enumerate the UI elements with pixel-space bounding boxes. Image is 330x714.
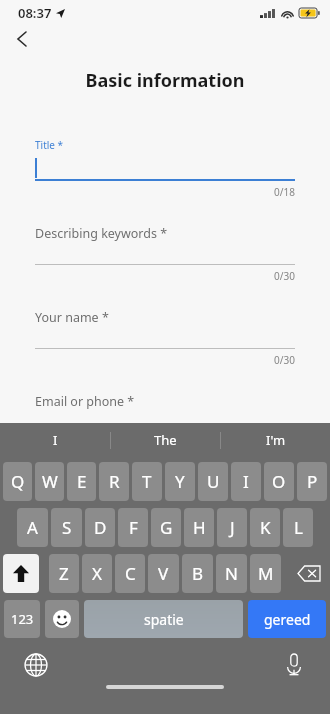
staticText: I: [53, 431, 58, 449]
button[interactable]: R: [99, 462, 129, 501]
button[interactable]: gereed: [248, 600, 326, 638]
button[interactable]: spatie: [84, 600, 243, 638]
staticText: P: [307, 470, 318, 493]
button[interactable]: D: [85, 508, 115, 547]
button[interactable]: G: [151, 508, 181, 547]
button[interactable]: L: [283, 508, 313, 547]
staticText: Q: [11, 470, 25, 493]
staticText: Your name *: [35, 309, 109, 326]
staticText: I: [243, 470, 249, 493]
button[interactable]: Shift: [3, 554, 39, 593]
staticText: gereed: [264, 610, 311, 629]
button[interactable]: Your name *: [35, 309, 295, 367]
staticText: Describing keywords *: [35, 225, 168, 242]
button[interactable]: M: [250, 554, 281, 593]
button[interactable]: C: [115, 554, 145, 593]
button[interactable]: I: [231, 462, 261, 501]
staticText: W: [42, 470, 58, 493]
staticText: R: [109, 470, 120, 493]
staticText: 0/30: [35, 353, 295, 367]
button[interactable]: T: [132, 462, 162, 501]
staticText: O: [272, 470, 286, 493]
button[interactable]: H: [184, 508, 214, 547]
button[interactable]: W: [35, 462, 64, 501]
staticText: A: [27, 516, 38, 539]
button[interactable]: B: [182, 554, 213, 593]
staticText: 0/18: [35, 185, 295, 199]
staticText: H: [193, 516, 206, 539]
button[interactable]: S: [51, 508, 82, 547]
staticText: The: [154, 431, 177, 449]
staticText: G: [160, 516, 173, 539]
staticText: 0/30: [35, 437, 295, 451]
button[interactable]: F: [118, 508, 148, 547]
staticText: E: [77, 470, 87, 493]
button[interactable]: K: [250, 508, 280, 547]
staticText: L: [294, 516, 303, 539]
staticText: F: [129, 516, 138, 539]
button[interactable]: Back: [0, 26, 44, 52]
button[interactable]: U: [198, 462, 228, 501]
button[interactable]: J: [217, 508, 247, 547]
button[interactable]: Title *: [35, 138, 295, 199]
button[interactable]: Y: [165, 462, 195, 501]
button[interactable]: Emoji: [45, 600, 79, 638]
staticText: 0/30: [35, 269, 295, 283]
button[interactable]: P: [297, 462, 327, 501]
staticText: 123: [11, 610, 34, 628]
staticText: U: [207, 470, 220, 493]
staticText: T: [142, 470, 152, 493]
button[interactable]: Z: [49, 554, 79, 593]
button[interactable]: Voice input: [278, 649, 310, 681]
staticText: Y: [175, 470, 185, 493]
button[interactable]: E: [67, 462, 96, 501]
staticText: N: [225, 562, 238, 585]
staticText: I'm: [266, 431, 286, 449]
button[interactable]: O: [264, 462, 294, 501]
button[interactable]: V: [148, 554, 179, 593]
button[interactable]: N: [216, 554, 247, 593]
button[interactable]: I: [0, 423, 110, 457]
staticText: 08:37: [18, 4, 52, 22]
staticText: X: [92, 562, 102, 585]
button[interactable]: Change keyboard language: [20, 649, 52, 681]
staticText: K: [260, 516, 271, 539]
staticText: S: [62, 516, 72, 539]
button[interactable]: I'm: [221, 423, 330, 457]
button[interactable]: 123: [4, 600, 40, 638]
button[interactable]: Email or phone *: [35, 393, 295, 451]
button[interactable]: Describing keywords *: [35, 225, 295, 283]
staticText: J: [230, 516, 235, 539]
staticText: V: [158, 562, 169, 585]
button[interactable]: A: [17, 508, 48, 547]
staticText: C: [125, 562, 136, 585]
staticText: B: [192, 562, 204, 585]
staticText: Basic information: [0, 68, 330, 93]
button[interactable]: Backspace: [291, 554, 327, 593]
staticText: spatie: [144, 610, 184, 629]
staticText: Email or phone *: [35, 393, 135, 410]
staticText: Z: [59, 562, 69, 585]
button[interactable]: The: [111, 423, 220, 457]
staticText: D: [94, 516, 107, 539]
button[interactable]: Q: [3, 462, 32, 501]
button[interactable]: X: [82, 554, 112, 593]
staticText: M: [258, 562, 274, 585]
staticText: Title *: [35, 138, 64, 152]
